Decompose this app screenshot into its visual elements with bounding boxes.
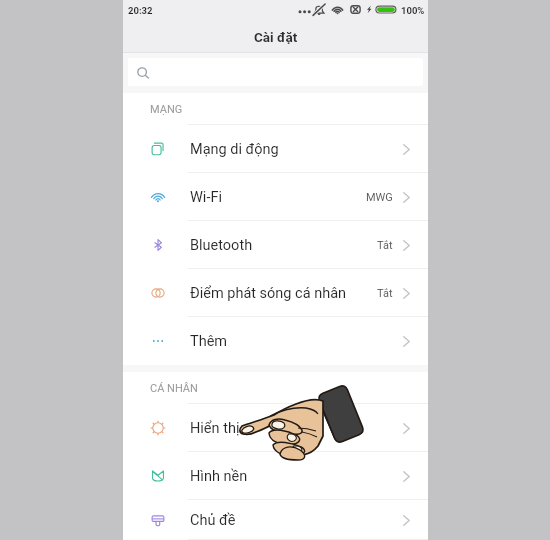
button[interactable]: Hiển thị (123, 404, 428, 452)
button[interactable]: Thêm (123, 317, 428, 365)
button[interactable]: Hình nền (123, 452, 428, 500)
staticText: Tắt (377, 239, 393, 252)
staticText: Cài đặt (254, 29, 298, 45)
staticText: Wi-Fi (190, 189, 222, 206)
staticText: 20:32 (128, 5, 153, 16)
button[interactable]: Search (128, 58, 423, 86)
staticText: Điểm phát sóng cá nhân (190, 285, 347, 302)
staticText: Hình nền (190, 468, 248, 485)
button[interactable]: Điểm phát sóng cá nhân (123, 269, 428, 317)
button[interactable]: Mạng di động (123, 125, 428, 173)
staticText: Thêm (190, 333, 228, 350)
staticText: Chủ đề (190, 512, 236, 529)
staticText: Bluetooth (190, 237, 253, 254)
staticText: Tắt (377, 287, 393, 300)
staticText: Mạng di động (190, 141, 279, 158)
staticText: Hiển thị (190, 420, 240, 437)
button[interactable]: Wi-Fi (123, 173, 428, 221)
staticText: 100% (401, 5, 425, 16)
staticText: MẠNG (150, 103, 183, 116)
staticText: MWG (366, 191, 393, 204)
button[interactable]: Chủ đề (123, 500, 428, 540)
staticText: CÁ NHÂN (150, 382, 198, 395)
button[interactable]: Bluetooth (123, 221, 428, 269)
